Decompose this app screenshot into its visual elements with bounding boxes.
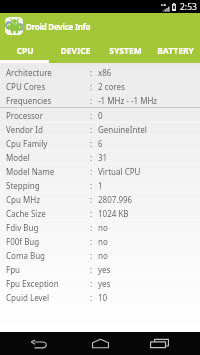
staticText: 2 cores [98, 81, 125, 92]
staticText: no [98, 222, 108, 233]
button[interactable]: BATTERY [150, 39, 200, 62]
staticText: DEVICE [60, 45, 91, 57]
button[interactable]: CPU [0, 39, 50, 62]
staticText: Droid Device Info [26, 21, 91, 32]
staticText: yes [98, 278, 111, 289]
staticText: CPU [16, 45, 34, 57]
staticText: : [90, 138, 93, 149]
staticText: no [98, 236, 108, 247]
button[interactable]: SYSTEM [100, 39, 150, 62]
button[interactable]: Coma Bug [0, 248, 200, 262]
staticText: Cache Size [6, 208, 46, 219]
staticText: Cpu Family [6, 138, 48, 149]
staticText: Stepping [6, 180, 40, 191]
staticText: : [90, 250, 93, 261]
staticText: : [90, 152, 93, 163]
button[interactable]: Fpu [0, 262, 200, 276]
button[interactable]: Processor [0, 108, 200, 122]
staticText: : [90, 208, 93, 219]
staticText: Processor [6, 110, 43, 121]
staticText: Cpuid Level [6, 292, 50, 303]
staticText: : [90, 67, 93, 78]
button[interactable]: Fpu Exception [0, 276, 200, 290]
staticText: : [90, 236, 93, 247]
button[interactable]: Model [0, 150, 200, 164]
staticText: Vendor Id [6, 124, 43, 135]
button[interactable]: Vendor Id [0, 122, 200, 136]
button[interactable]: Architecture [0, 65, 200, 79]
staticText: Cpu MHz [6, 194, 40, 205]
staticText: BATTERY [157, 45, 194, 57]
staticText: : [90, 110, 93, 121]
staticText: 31 [98, 152, 108, 163]
staticText: : [90, 124, 93, 135]
button[interactable]: Model Name [0, 164, 200, 178]
staticText: 1 [98, 180, 103, 191]
staticText: Fpu Exception [6, 278, 59, 289]
staticText: Fpu [6, 264, 21, 275]
button[interactable]: Frequencies [0, 93, 200, 107]
button[interactable]: Cache Size [0, 206, 200, 220]
staticText: Fdiv Bug [6, 222, 39, 233]
staticText: : [90, 95, 93, 106]
staticText: 0 [98, 110, 103, 121]
button[interactable]: CPU Cores [0, 79, 200, 93]
staticText: F00f Bug [6, 236, 40, 247]
button[interactable]: Cpu Family [0, 136, 200, 150]
staticText: x86 [98, 67, 112, 78]
staticText: Virtual CPU [98, 166, 141, 177]
button[interactable]: Home [71, 332, 129, 355]
button[interactable]: F00f Bug [0, 234, 200, 248]
button[interactable]: Fdiv Bug [0, 220, 200, 234]
staticText: SYSTEM [109, 45, 142, 57]
staticText: GenuineIntel [98, 124, 147, 135]
staticText: 10 [98, 292, 108, 303]
button[interactable]: DEVICE [50, 39, 100, 62]
staticText: Coma Bug [6, 250, 46, 261]
staticText: yes [98, 264, 111, 275]
button[interactable]: Cpuid Level [0, 290, 200, 304]
staticText: Model [6, 152, 30, 163]
staticText: : [90, 222, 93, 233]
staticText: 2807.996 [98, 194, 133, 205]
staticText: : [90, 194, 93, 205]
button[interactable]: Recent apps [122, 332, 200, 355]
staticText: -1 MHz - -1 MHz [98, 95, 158, 106]
staticText: Frequencies [6, 95, 52, 106]
staticText: : [90, 180, 93, 191]
button[interactable]: Cpu MHz [0, 192, 200, 206]
staticText: : [90, 81, 93, 92]
staticText: : [90, 278, 93, 289]
staticText: : [90, 166, 93, 177]
staticText: 6 [98, 138, 103, 149]
staticText: Model Name [6, 166, 55, 177]
button[interactable]: Back [0, 332, 78, 355]
staticText: 2:53 [180, 1, 197, 13]
staticText: : [90, 292, 93, 303]
button[interactable]: Stepping [0, 178, 200, 192]
staticText: no [98, 250, 108, 261]
staticText: CPU Cores [6, 81, 46, 92]
staticText: Architecture [6, 67, 52, 78]
staticText: 1024 KB [98, 208, 129, 219]
staticText: : [90, 264, 93, 275]
